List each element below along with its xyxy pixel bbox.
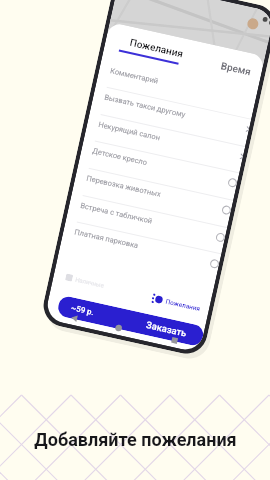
staticText: Заказать	[145, 319, 188, 339]
staticText: Некурящий салон	[97, 120, 161, 142]
staticText: Вызвать такси другому	[104, 93, 187, 119]
button[interactable]: Встреча с табличкой	[65, 195, 227, 256]
button[interactable]: Вызвать такси другому	[90, 86, 251, 148]
staticText: Время	[220, 60, 253, 78]
button[interactable]: ~59 р.	[56, 295, 205, 347]
staticText: Детское кресло	[92, 146, 148, 167]
staticText: Перевозка животных	[86, 174, 162, 199]
staticText: Платная парковка	[74, 227, 139, 250]
other: Выбрать	[209, 258, 220, 269]
staticText: ~59 р.	[70, 303, 95, 317]
staticText: Добавляйте пожелания	[34, 429, 237, 450]
button[interactable]: Перевозка животных	[72, 167, 233, 229]
button[interactable]: Пожелания	[151, 293, 202, 314]
button[interactable]: Некурящий салон	[83, 114, 245, 175]
staticText: Пожелания	[165, 298, 202, 313]
button[interactable]: Комментарий	[95, 60, 257, 122]
staticText: Комментарий	[109, 66, 159, 86]
other: Выбрать	[215, 232, 226, 243]
other: Открыть	[244, 126, 250, 132]
other: Открыть	[238, 153, 243, 160]
staticText: Наличные	[75, 276, 105, 289]
button[interactable]: Платная парковка	[60, 221, 221, 283]
button[interactable]: Детское кресло	[78, 140, 239, 202]
other: Выбрать	[221, 205, 232, 215]
staticText: Пожелания	[129, 37, 185, 60]
staticText: Встреча с табличкой	[79, 201, 154, 226]
other: Выбрать	[227, 177, 238, 188]
